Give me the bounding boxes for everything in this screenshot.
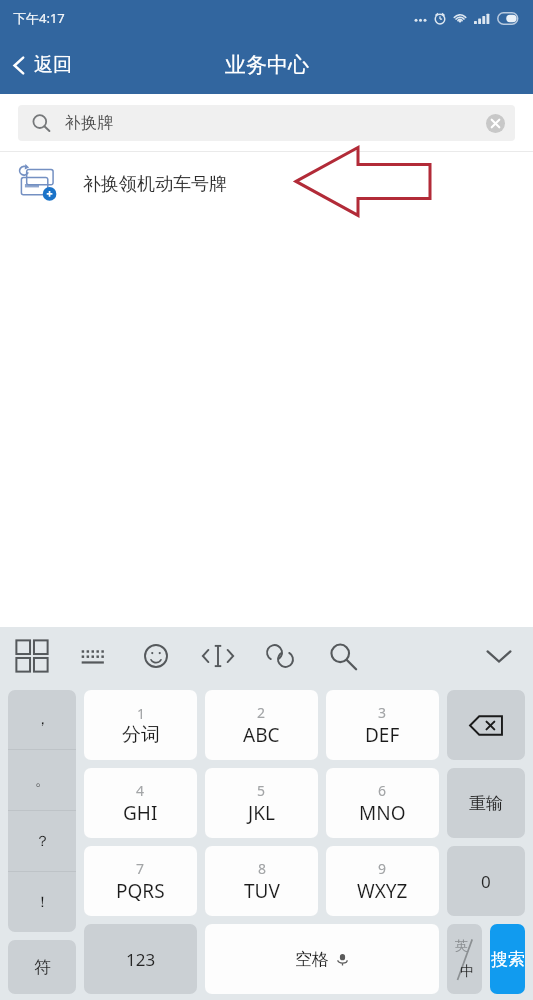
button[interactable]: Move cursor [196, 634, 240, 678]
staticText: GHI [123, 800, 158, 826]
button[interactable]: 5 [205, 768, 318, 838]
button[interactable]: 9 [326, 846, 439, 916]
staticText: ， [35, 710, 50, 729]
button[interactable]: ， [8, 690, 76, 749]
staticText: 中 [460, 963, 474, 981]
staticText: PQRS [116, 878, 165, 904]
staticText: 下午4:17 [13, 9, 65, 27]
button[interactable]: Keyboard layouts [10, 634, 54, 678]
staticText: 5 [257, 781, 266, 800]
staticText: 补换领机动车号牌 [83, 173, 227, 196]
staticText: 6 [378, 781, 387, 800]
button[interactable]: 7 [84, 846, 197, 916]
staticText: 9 [378, 859, 387, 878]
staticText: JKL [248, 800, 275, 826]
button[interactable]: Emoji [134, 634, 178, 678]
staticText: 123 [126, 948, 156, 971]
button[interactable]: Change keyboard [72, 634, 116, 678]
button[interactable]: Search [18, 105, 515, 141]
staticText: 英 [455, 937, 468, 953]
staticText: 1 [137, 704, 146, 723]
staticText: 搜索 [491, 949, 525, 970]
button[interactable]: ！ [8, 872, 76, 932]
staticText: TUV [244, 878, 280, 904]
button[interactable]: 补换领机动车号牌 [0, 152, 533, 216]
staticText: 空格 [295, 949, 329, 970]
staticText: 7 [136, 859, 145, 878]
staticText: 分词 [122, 723, 160, 747]
staticText: 0 [481, 870, 491, 893]
button[interactable]: 123 [84, 924, 197, 994]
staticText: WXYZ [357, 878, 408, 904]
staticText: 8 [258, 859, 267, 878]
button[interactable]: Clear text [478, 106, 512, 140]
staticText: DEF [365, 722, 400, 748]
button[interactable]: 搜索 [490, 924, 525, 994]
staticText: ？ [35, 832, 50, 851]
button[interactable]: ？ [8, 811, 76, 871]
staticText: 4 [136, 781, 145, 800]
staticText: MNO [359, 800, 406, 826]
button[interactable]: 8 [205, 846, 318, 916]
staticText: ！ [35, 893, 50, 912]
staticText: 。 [35, 771, 50, 790]
staticText: ABC [243, 722, 280, 748]
staticText: 补换牌 [65, 113, 113, 133]
button[interactable]: 4 [84, 768, 197, 838]
staticText: 符 [34, 957, 51, 978]
button[interactable]: Clipboard [258, 634, 302, 678]
staticText: 返回 [34, 53, 72, 77]
button[interactable]: Search [320, 634, 364, 678]
button[interactable]: 符 [8, 940, 76, 994]
button[interactable]: 返回 [0, 43, 88, 87]
button[interactable]: Backspace [447, 690, 525, 760]
button[interactable]: 3 [326, 690, 439, 760]
staticText: 2 [257, 703, 266, 722]
button[interactable]: 2 [205, 690, 318, 760]
button[interactable]: Switch Chinese English [447, 924, 482, 994]
button[interactable]: 1 [84, 690, 197, 760]
other: Search [31, 113, 51, 133]
staticText: 业务中心 [225, 52, 309, 78]
button[interactable]: 6 [326, 768, 439, 838]
staticText: 重输 [469, 793, 503, 814]
other: Pointer annotation [0, 152, 533, 216]
staticText: 3 [378, 703, 387, 722]
button[interactable]: 重输 [447, 768, 525, 838]
button[interactable]: Hide keyboard [477, 634, 521, 678]
button[interactable]: 。 [8, 750, 76, 810]
button[interactable]: 0 [447, 846, 525, 916]
button[interactable]: 空格 [205, 924, 439, 994]
